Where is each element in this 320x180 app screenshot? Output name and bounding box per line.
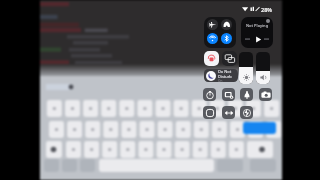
button[interactable]: Flashlight	[240, 88, 253, 101]
button[interactable]: Do Not	[204, 69, 238, 82]
button[interactable]: Notes	[222, 88, 235, 101]
button[interactable]: Go	[243, 122, 276, 134]
button[interactable]: Airplane mode	[207, 19, 218, 30]
button[interactable]: AirPlay	[266, 19, 270, 23]
button[interactable]: Cellular data	[221, 19, 232, 30]
staticText: On	[218, 79, 223, 82]
button[interactable]: Screen mirroring	[222, 51, 237, 66]
button[interactable]: Wi-Fi	[207, 33, 218, 44]
button[interactable]: Volume	[256, 52, 270, 84]
button[interactable]: Sound recognition	[222, 106, 235, 119]
button[interactable]: Not Playing	[241, 17, 273, 48]
button[interactable]: Camera	[259, 88, 272, 101]
button[interactable]: Low power mode	[203, 106, 216, 119]
button[interactable]: Timer	[203, 88, 216, 101]
staticText: Not Playing	[246, 23, 269, 28]
staticText: 28%	[261, 6, 272, 12]
button[interactable]: Brightness	[239, 52, 253, 84]
staticText: Do Not	[218, 69, 232, 74]
button[interactable]: Bluetooth	[221, 33, 232, 44]
staticText: Disturb	[218, 74, 232, 79]
button[interactable]: Shazam	[240, 106, 253, 119]
button[interactable]: Rotation lock	[204, 51, 219, 66]
